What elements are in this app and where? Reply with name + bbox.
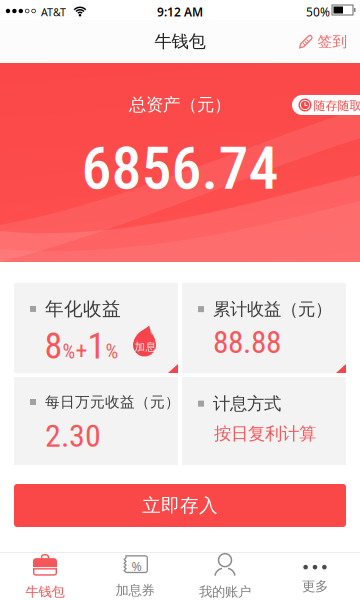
staticText: 随存随取	[313, 98, 360, 113]
staticText: 8	[44, 325, 62, 367]
button[interactable]: %	[90, 552, 180, 600]
staticText: %	[105, 340, 118, 363]
staticText: 88.88	[213, 324, 281, 361]
staticText: 总资产（元）	[129, 94, 231, 115]
staticText: 6856.74	[81, 133, 278, 203]
staticText: %	[62, 340, 75, 363]
button[interactable]: 更多	[270, 552, 360, 600]
staticText: 签到	[317, 32, 347, 50]
staticText: 每日万元收益（元）	[45, 393, 180, 411]
staticText: 计息方式	[213, 393, 281, 414]
button[interactable]: 牛钱包	[0, 552, 90, 600]
staticText: 牛钱包	[154, 31, 205, 52]
staticText: AT&T	[41, 5, 66, 19]
staticText: 加息	[134, 340, 156, 354]
staticText: 50%	[306, 4, 330, 20]
staticText: 加息券	[115, 582, 154, 599]
staticText: 1	[87, 325, 105, 367]
staticText: 按日复利计算	[214, 423, 316, 444]
staticText: 更多	[302, 578, 328, 595]
staticText: 9:12 AM	[157, 4, 203, 20]
staticText: 累计收益（元）	[213, 298, 332, 320]
staticText: 牛钱包	[25, 584, 64, 600]
staticText: +	[75, 336, 87, 364]
staticText: 我的账户	[199, 584, 251, 600]
button[interactable]: 我的账户	[180, 552, 270, 600]
button[interactable]: 立即存入	[14, 484, 346, 527]
staticText: %	[131, 558, 141, 574]
staticText: 年化收益	[45, 297, 121, 320]
button[interactable]: 签到	[291, 20, 355, 63]
staticText: 立即存入	[142, 494, 218, 517]
staticText: 2.30	[45, 417, 101, 454]
